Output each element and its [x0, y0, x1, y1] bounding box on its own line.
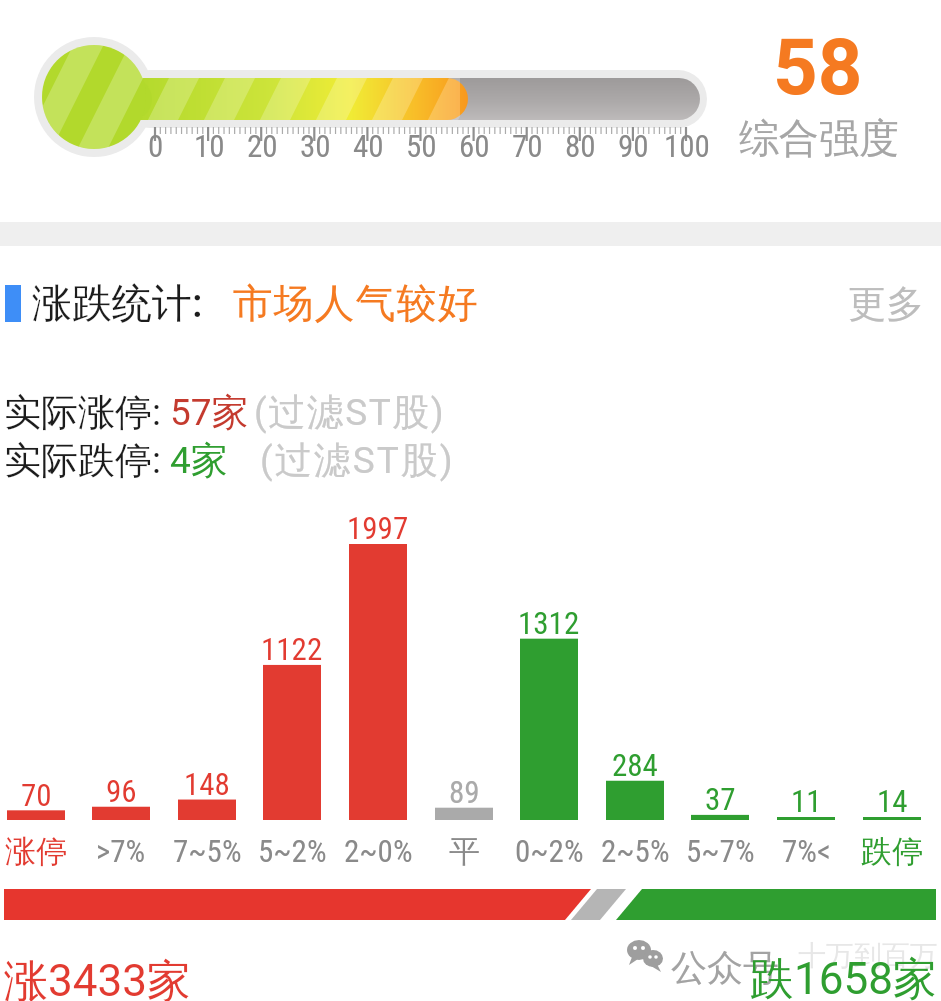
staticText: 11 — [791, 783, 822, 819]
staticText: 跌1658家 — [750, 952, 937, 1001]
staticText: 1312 — [518, 605, 580, 641]
staticText: >7% — [96, 833, 146, 869]
staticText: 7~5% — [173, 833, 242, 869]
staticText: 20 — [247, 128, 278, 164]
staticText: 30 — [300, 128, 331, 164]
staticText: 90 — [618, 128, 649, 164]
staticText: 70 — [21, 777, 52, 813]
staticText: 实际涨停: — [4, 389, 161, 436]
button[interactable]: 涨跌统计: — [0, 276, 700, 328]
staticText: 市场人气较好 — [232, 278, 478, 328]
staticText: (过滤ST股) — [260, 437, 455, 484]
staticText: 1997 — [347, 510, 409, 546]
staticText: 58 — [773, 22, 863, 102]
staticText: 跌停 — [861, 832, 923, 871]
staticText: 10 — [194, 128, 225, 164]
staticText: 更多 — [848, 280, 924, 326]
staticText: 0~2% — [515, 833, 584, 869]
staticText: 实际跌停: — [4, 437, 161, 484]
staticText: 涨3433家 — [4, 954, 191, 1001]
staticText: 涨跌统计: — [32, 278, 203, 328]
staticText: 70 — [512, 128, 543, 164]
staticText: 1122 — [261, 631, 323, 667]
staticText: (过滤ST股) — [254, 389, 446, 436]
staticText: 涨停 — [5, 832, 67, 871]
staticText: 89 — [449, 774, 480, 810]
staticText: 2~0% — [344, 833, 413, 869]
button[interactable]: 更多 — [838, 278, 938, 324]
staticText: 100 — [664, 128, 710, 164]
staticText: 2~5% — [601, 833, 670, 869]
staticText: 综合强度 — [739, 113, 899, 163]
staticText: 96 — [106, 773, 137, 809]
staticText: 60 — [459, 128, 490, 164]
staticText: 40 — [353, 128, 384, 164]
staticText: 4家 — [170, 437, 228, 484]
staticText: 5~2% — [258, 833, 327, 869]
staticText: 0 — [148, 128, 164, 164]
staticText: 148 — [184, 766, 230, 802]
staticText: 14 — [877, 783, 908, 819]
staticText: 50 — [406, 128, 437, 164]
staticText: 80 — [565, 128, 596, 164]
staticText: 平 — [449, 832, 480, 871]
staticText: 公众号 — [671, 945, 779, 990]
staticText: 284 — [612, 747, 658, 783]
staticText: 十万到百万 — [798, 938, 938, 973]
staticText: 37 — [705, 781, 736, 817]
staticText: 57家 — [170, 389, 249, 436]
staticText: 7%< — [782, 833, 831, 869]
staticText: 5~7% — [686, 833, 755, 869]
